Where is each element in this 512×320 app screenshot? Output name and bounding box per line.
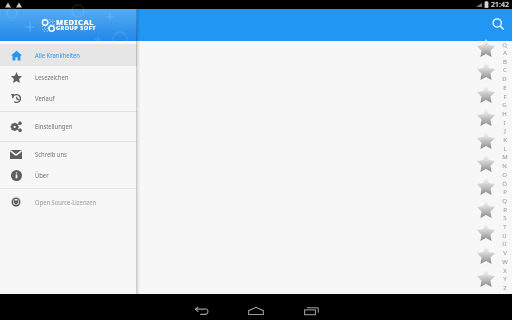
button[interactable]: Einstellungen (0, 115, 137, 136)
button[interactable]: Back (182, 302, 220, 320)
staticText: R (503, 206, 507, 214)
button[interactable]: Verlauf (0, 87, 137, 108)
staticText: T (503, 223, 507, 231)
staticText: S (503, 214, 507, 222)
staticText: C (503, 66, 507, 74)
staticText: Lesezeichen (35, 72, 68, 82)
staticText: Ö (502, 180, 507, 188)
staticText: U (502, 232, 507, 240)
staticText: H (502, 110, 507, 118)
staticText: W (502, 258, 508, 266)
staticText: K (503, 136, 507, 144)
staticText: GROUP SOFT (56, 24, 97, 31)
staticText: Über (35, 170, 49, 180)
button[interactable]: Open Source-Lizenzen (0, 191, 137, 212)
staticText: L (503, 145, 507, 153)
staticText: Ü (502, 240, 507, 248)
staticText: X (503, 267, 507, 275)
staticText: 21:42 (491, 0, 509, 9)
staticText: P (503, 188, 507, 196)
staticText: F (503, 93, 507, 101)
button[interactable]: Search (489, 15, 507, 33)
staticText: Alle Krankheiten (35, 50, 80, 60)
button[interactable]: Lesezeichen (0, 66, 137, 87)
staticText: O (502, 171, 507, 179)
button[interactable]: Home (237, 302, 275, 320)
staticText: D (502, 75, 507, 83)
staticText: Schreib uns (35, 149, 67, 159)
staticText: Verlauf (35, 93, 55, 103)
staticText: I (503, 119, 506, 127)
staticText: G (502, 101, 507, 109)
button[interactable]: Recent apps (292, 302, 330, 320)
staticText: E (503, 84, 507, 92)
staticText: Open Source-Lizenzen (35, 197, 97, 207)
staticText: N (502, 162, 507, 170)
staticText: Y (503, 275, 507, 283)
staticText: MEDICAL (56, 17, 95, 27)
button[interactable]: Über (0, 164, 137, 185)
staticText: Z (503, 284, 507, 292)
staticText: Q (502, 197, 507, 205)
button[interactable]: Alle Krankheiten (0, 44, 137, 66)
staticText: A (503, 49, 507, 57)
staticText: J (504, 127, 506, 135)
button[interactable]: Schreib uns (0, 143, 137, 164)
staticText: B (503, 58, 507, 66)
staticText: M (502, 153, 508, 161)
staticText: Einstellungen (35, 121, 72, 131)
staticText: V (503, 249, 507, 257)
